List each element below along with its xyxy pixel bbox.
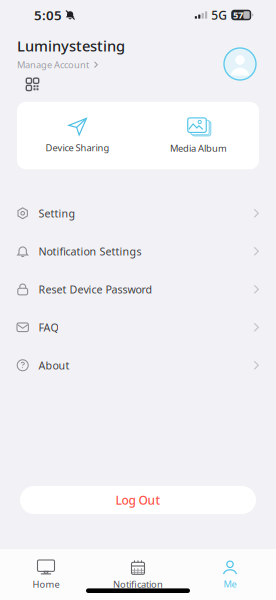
button[interactable]: Notification: [92, 560, 184, 590]
button[interactable]: Me: [184, 560, 276, 590]
staticText: Notification: [113, 578, 163, 590]
staticText: Luminystesting: [17, 36, 125, 55]
staticText: FAQ: [38, 320, 58, 334]
button[interactable]: Home: [0, 560, 92, 590]
staticText: 5:05: [34, 6, 62, 24]
staticText: Setting: [38, 206, 75, 220]
staticText: 5G: [211, 7, 227, 23]
button[interactable]: Manage Account: [17, 58, 98, 71]
staticText: Home: [32, 578, 59, 590]
staticText: Log Out: [115, 492, 160, 508]
staticText: About: [38, 358, 69, 372]
staticText: Me: [223, 578, 236, 590]
button[interactable]: FAQ: [0, 308, 276, 346]
button[interactable]: QR Code: [17, 78, 39, 91]
button[interactable]: Device Sharing: [17, 117, 138, 154]
staticText: Manage Account: [17, 58, 89, 71]
staticText: Media Album: [170, 142, 227, 154]
staticText: Notification Settings: [38, 244, 141, 258]
button[interactable]: About: [0, 346, 276, 384]
button[interactable]: Notification Settings: [0, 232, 276, 270]
staticText: Reset Device Password: [38, 282, 152, 296]
button[interactable]: Profile: [224, 36, 259, 80]
staticText: Device Sharing: [45, 141, 109, 154]
button[interactable]: Media Album: [138, 117, 259, 154]
button[interactable]: Log Out: [20, 486, 256, 514]
button[interactable]: Reset Device Password: [0, 270, 276, 308]
staticText: 57: [233, 9, 243, 21]
button[interactable]: Setting: [0, 194, 276, 232]
